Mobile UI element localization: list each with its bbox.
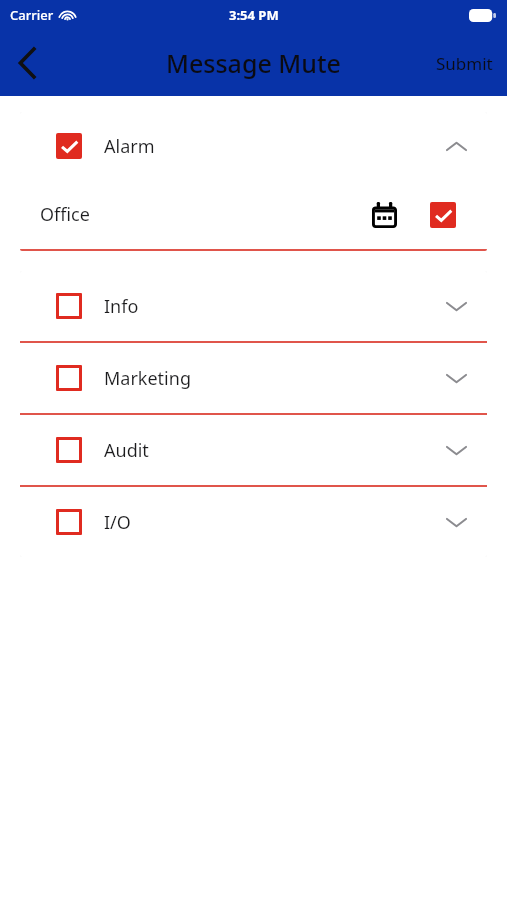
staticText: Alarm — [104, 134, 155, 159]
button[interactable]: Expand Info — [433, 283, 479, 329]
staticText: Office — [40, 202, 90, 227]
button[interactable]: Pick date — [363, 194, 405, 236]
staticText: Info — [104, 294, 139, 319]
button[interactable]: Back — [0, 36, 54, 90]
button[interactable]: Expand Audit — [433, 427, 479, 473]
button[interactable]: Info — [20, 271, 487, 341]
button[interactable]: Submit — [422, 42, 507, 85]
button[interactable]: I/O — [20, 487, 487, 557]
button[interactable]: Collapse — [433, 123, 479, 169]
button[interactable]: Expand I/O — [433, 499, 479, 545]
staticText: 3:54 PM — [229, 6, 279, 24]
button[interactable]: Expand Marketing — [433, 355, 479, 401]
staticText: Submit — [436, 52, 493, 75]
staticText: Audit — [104, 438, 149, 463]
button[interactable]: Marketing — [20, 343, 487, 413]
staticText: Message Mute — [166, 46, 341, 80]
staticText: Marketing — [104, 366, 191, 391]
button[interactable]: Office — [20, 180, 487, 249]
staticText: I/O — [104, 510, 131, 535]
button[interactable]: Alarm — [20, 112, 487, 180]
staticText: Carrier — [10, 6, 54, 24]
button[interactable]: Audit — [20, 415, 487, 485]
